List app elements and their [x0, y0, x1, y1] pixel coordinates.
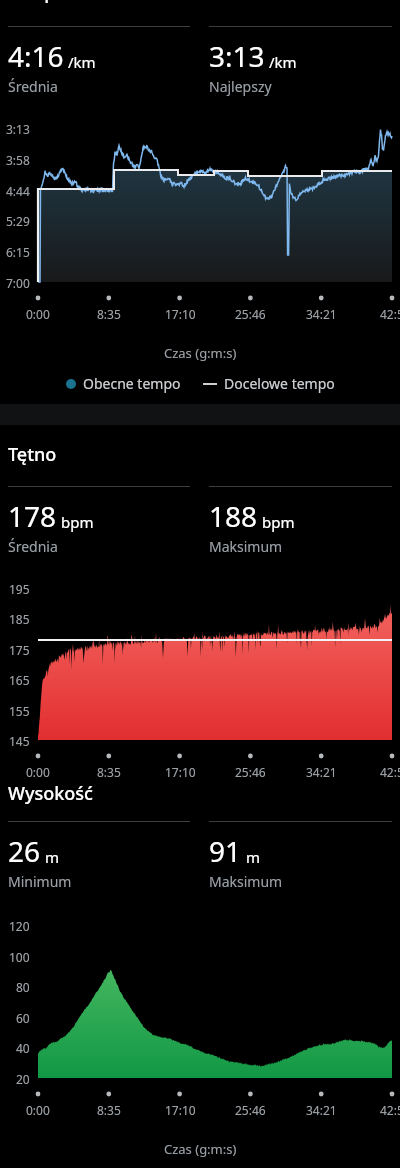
- staticText: Najlepszy: [209, 77, 272, 96]
- staticText: Obecne tempo: [83, 374, 181, 393]
- staticText: 42:5: [380, 306, 400, 322]
- staticText: 3:58: [6, 152, 30, 168]
- staticText: Czas (g:m:s): [164, 344, 237, 362]
- staticText: Wysokość: [8, 781, 93, 806]
- staticText: m: [45, 847, 60, 867]
- button[interactable]: 178: [8, 486, 190, 556]
- staticText: 0:00: [26, 306, 50, 322]
- staticText: 25:46: [235, 306, 266, 322]
- button[interactable]: 188: [209, 486, 392, 556]
- button[interactable]: 3:13: [209, 26, 392, 96]
- staticText: /km: [269, 52, 297, 72]
- staticText: 6:15: [6, 244, 30, 260]
- staticText: Maksimum: [209, 537, 283, 556]
- staticText: 185: [9, 611, 30, 627]
- staticText: 42:5: [380, 1102, 400, 1118]
- staticText: 5:29: [6, 213, 30, 229]
- staticText: 120: [9, 918, 30, 934]
- button[interactable]: 91: [209, 821, 392, 891]
- staticText: 165: [9, 672, 30, 688]
- staticText: 178: [8, 497, 57, 535]
- staticText: 34:21: [306, 1102, 337, 1118]
- staticText: Minimum: [8, 872, 72, 891]
- staticText: 17:10: [165, 764, 196, 780]
- staticText: 145: [9, 733, 30, 749]
- staticText: Czas (g:m:s): [164, 1140, 237, 1158]
- staticText: /km: [68, 52, 96, 72]
- staticText: Maksimum: [209, 872, 283, 891]
- staticText: 188: [209, 497, 258, 535]
- staticText: 3:13: [209, 37, 265, 75]
- staticText: 34:21: [306, 306, 337, 322]
- staticText: 60: [16, 1010, 30, 1026]
- staticText: 195: [9, 581, 30, 597]
- staticText: 26: [8, 832, 41, 870]
- staticText: Tempo: [8, 0, 67, 5]
- staticText: 42:5: [380, 764, 400, 780]
- staticText: 91: [209, 832, 242, 870]
- button[interactable]: 26: [8, 821, 190, 891]
- staticText: 25:46: [235, 764, 266, 780]
- staticText: 3:13: [6, 121, 30, 137]
- staticText: Tętno: [8, 442, 57, 467]
- staticText: 0:00: [26, 764, 50, 780]
- staticText: 0:00: [26, 1102, 50, 1118]
- button[interactable]: 4:16: [8, 26, 190, 96]
- staticText: bpm: [262, 512, 295, 532]
- staticText: 17:10: [165, 1102, 196, 1118]
- staticText: 25:46: [235, 1102, 266, 1118]
- staticText: Średnia: [8, 77, 58, 96]
- staticText: m: [246, 847, 261, 867]
- staticText: 20: [16, 1071, 30, 1087]
- staticText: 100: [9, 949, 30, 965]
- staticText: 4:16: [8, 37, 64, 75]
- staticText: bpm: [61, 512, 94, 532]
- staticText: 7:00: [6, 275, 30, 291]
- staticText: Średnia: [8, 537, 58, 556]
- staticText: 40: [16, 1040, 30, 1056]
- staticText: 175: [9, 642, 30, 658]
- staticText: Docelowe tempo: [224, 374, 335, 393]
- staticText: 17:10: [165, 306, 196, 322]
- staticText: 4:44: [6, 183, 30, 199]
- staticText: 155: [9, 703, 30, 719]
- staticText: 80: [16, 979, 30, 995]
- staticText: 8:35: [97, 1102, 121, 1118]
- staticText: 8:35: [97, 306, 121, 322]
- staticText: 8:35: [97, 764, 121, 780]
- staticText: 34:21: [306, 764, 337, 780]
